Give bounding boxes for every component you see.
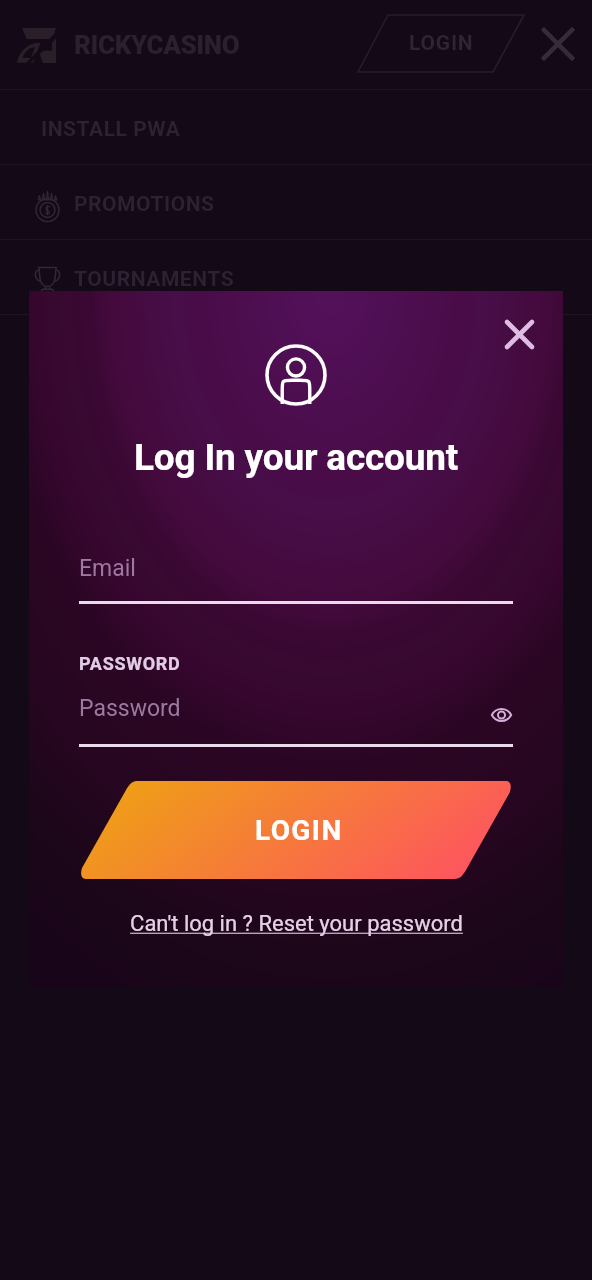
staticText: LOGIN xyxy=(409,31,474,56)
staticText: LOGIN xyxy=(255,814,343,847)
staticText: Password xyxy=(79,695,181,722)
button[interactable]: RickyCasino home xyxy=(17,27,240,63)
button[interactable]: Show password xyxy=(482,696,520,734)
staticText: PASSWORD xyxy=(79,653,181,674)
button[interactable]: Can't log in ? Reset your password xyxy=(130,911,463,937)
button[interactable]: Close xyxy=(495,310,543,358)
button[interactable]: VIP CLUB xyxy=(0,315,592,389)
button[interactable]: LOGIN xyxy=(79,781,513,879)
button[interactable]: LOGIN xyxy=(357,14,525,73)
staticText: RICKYCASINO xyxy=(74,30,240,60)
button[interactable]: Close menu xyxy=(532,18,584,70)
button[interactable]: TOURNAMENTS xyxy=(0,240,592,314)
staticText: Email xyxy=(79,555,136,582)
button[interactable]: INSTALL PWA xyxy=(0,90,592,164)
staticText: TOURNAMENTS xyxy=(74,267,235,292)
staticText: Log In your account xyxy=(134,436,459,479)
staticText: INSTALL PWA xyxy=(41,117,181,142)
staticText: VIP CLUB xyxy=(74,342,170,367)
button[interactable]: PROMOTIONS xyxy=(0,165,592,239)
staticText: PROMOTIONS xyxy=(74,192,215,217)
